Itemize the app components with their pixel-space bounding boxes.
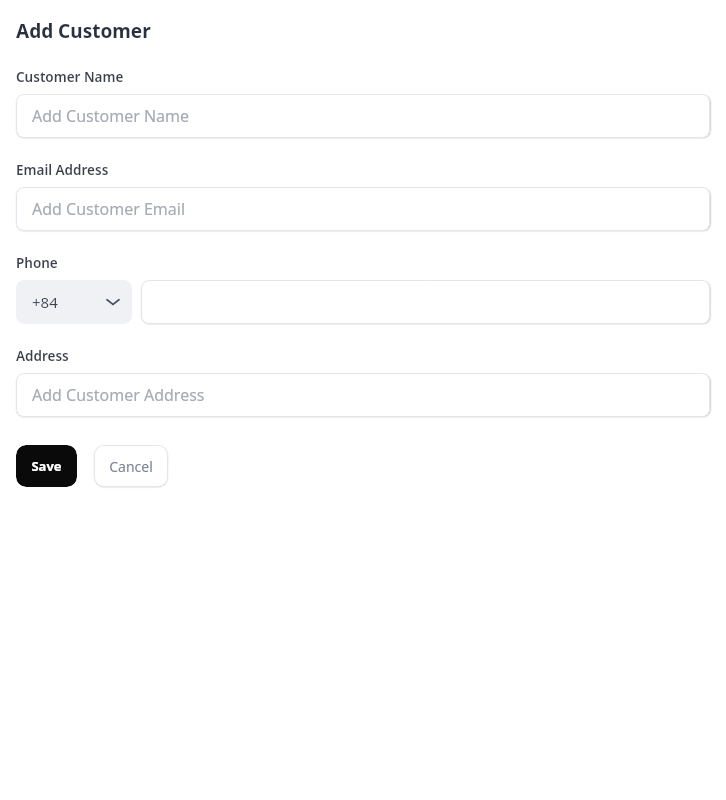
staticText: Phone (16, 254, 58, 272)
button[interactable]: Cancel (94, 445, 168, 487)
button[interactable]: Add Customer Email (16, 187, 710, 231)
staticText: +84 (32, 292, 58, 312)
staticText: Add Customer Email (32, 198, 186, 220)
staticText: Add Customer Address (32, 384, 205, 406)
staticText: Address (16, 347, 69, 365)
staticText: Add Customer Name (32, 105, 190, 127)
staticText: Cancel (109, 457, 153, 476)
staticText: Customer Name (16, 68, 124, 86)
button[interactable]: Add Customer Name (16, 94, 710, 138)
button[interactable]: Add Customer Address (16, 373, 710, 417)
staticText: Add Customer (16, 18, 151, 44)
button[interactable]: Save (16, 445, 77, 487)
staticText: Save (31, 457, 62, 475)
button[interactable]: Select country calling code (16, 280, 132, 324)
staticText: Email Address (16, 161, 109, 179)
button[interactable] (141, 280, 710, 324)
